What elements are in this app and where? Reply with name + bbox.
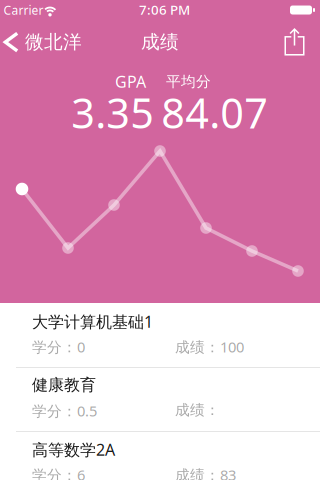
staticText: 微北洋: [25, 30, 82, 53]
staticText: GPA: [115, 71, 146, 92]
staticText: 学分：0: [32, 337, 85, 356]
staticText: 高等数学2A: [32, 439, 115, 460]
staticText: Carrier: [3, 2, 43, 18]
staticText: 大学计算机基础1: [32, 311, 153, 332]
staticText: 平均分: [166, 72, 211, 90]
staticText: 成绩: [141, 30, 179, 53]
button[interactable]: 健康教育: [0, 367, 320, 431]
button[interactable]: 高等数学2A: [0, 431, 320, 480]
button[interactable]: 大学计算机基础1: [0, 303, 320, 367]
staticText: 学分：6: [32, 465, 85, 480]
button[interactable]: 微北洋: [0, 30, 82, 53]
staticText: 3.35: [71, 85, 154, 140]
staticText: 学分：0.5: [32, 401, 97, 420]
staticText: 成绩：100: [175, 337, 244, 356]
staticText: 成绩：: [175, 401, 220, 419]
staticText: 84.07: [161, 85, 268, 140]
staticText: 健康教育: [32, 375, 96, 395]
staticText: 成绩：83: [175, 465, 236, 480]
staticText: 7:06 PM: [139, 1, 190, 18]
button[interactable]: Share: [284, 28, 320, 55]
